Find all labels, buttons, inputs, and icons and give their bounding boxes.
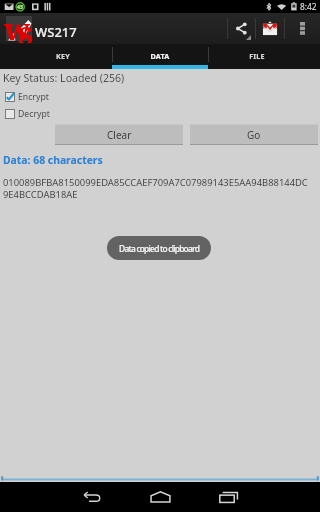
staticText: DATA <box>150 51 170 61</box>
button[interactable]: FILE <box>208 44 320 69</box>
button[interactable]: Go <box>190 124 318 145</box>
staticText: Go <box>247 128 261 142</box>
button[interactable]: Clear <box>55 124 183 145</box>
staticText: Encrypt <box>18 91 49 103</box>
staticText: 43 <box>17 3 23 10</box>
staticText: FILE <box>249 51 265 61</box>
staticText: Key Status: Loaded (256) <box>3 71 125 85</box>
staticText: KEY <box>56 51 70 61</box>
button[interactable]: KEY <box>0 44 112 69</box>
staticText: S <box>18 18 34 43</box>
button[interactable]: Recent apps <box>209 482 249 512</box>
button[interactable]: Back <box>73 482 111 512</box>
staticText: 8:42 <box>300 1 317 12</box>
staticText: Data: 68 characters <box>3 153 103 167</box>
staticText: WS217 <box>35 23 77 41</box>
staticText: Decrypt <box>18 108 50 120</box>
button[interactable]: More options <box>285 13 320 44</box>
button[interactable]: Decrypt <box>0 105 320 122</box>
staticText: Data copied to clipboard <box>119 243 200 254</box>
button[interactable]: DATA <box>112 44 208 69</box>
button[interactable]: Send email <box>256 13 284 44</box>
button[interactable]: Home <box>140 482 180 512</box>
staticText: W <box>4 15 30 40</box>
button[interactable]: Encrypt <box>0 88 320 105</box>
button[interactable]: Share <box>228 13 255 44</box>
staticText: Clear <box>107 128 132 142</box>
staticText: 010089BFBA8150099EDA85CCAEF709A7C0798914… <box>3 176 309 201</box>
